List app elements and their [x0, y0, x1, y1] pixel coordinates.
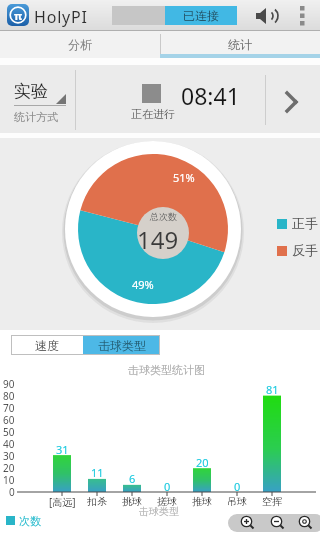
staticText: 推球: [192, 495, 212, 508]
staticText: 正手: [292, 215, 318, 231]
staticText: 实验: [14, 81, 48, 102]
staticText: 总次数: [150, 211, 177, 222]
staticText: 0: [234, 479, 241, 494]
staticText: π: [14, 8, 23, 23]
button[interactable]: [270, 515, 286, 531]
button[interactable]: 分析: [0, 31, 160, 58]
staticText: 正在进行: [131, 107, 175, 121]
staticText: 击球类型: [98, 338, 146, 353]
staticText: 20: [3, 461, 15, 475]
button[interactable]: 速度: [11, 335, 83, 355]
staticText: 已连接: [183, 8, 219, 23]
staticText: 搓球: [157, 495, 177, 508]
staticText: 击球类型: [139, 505, 179, 518]
staticText: 挑球: [122, 495, 142, 508]
button[interactable]: π: [7, 4, 29, 26]
staticText: 空挥: [262, 495, 282, 508]
staticText: 10: [3, 473, 15, 487]
staticText: 击球类型统计图: [128, 363, 205, 377]
button[interactable]: [281, 91, 301, 113]
staticText: 11: [91, 465, 104, 480]
staticText: 分析: [68, 37, 92, 52]
staticText: 吊球: [227, 495, 247, 508]
staticText: 30: [3, 449, 15, 463]
staticText: 20: [196, 455, 209, 470]
button[interactable]: [8, 75, 70, 125]
staticText: 51%: [173, 170, 195, 185]
staticText: 81: [266, 382, 279, 397]
staticText: 次数: [19, 514, 41, 528]
staticText: 统计: [228, 37, 252, 52]
staticText: 149: [137, 223, 179, 256]
staticText: 60: [3, 413, 15, 427]
button[interactable]: 统计: [160, 31, 320, 58]
staticText: 70: [3, 401, 15, 415]
staticText: 80: [3, 389, 15, 403]
staticText: 统计方式: [14, 110, 58, 124]
button[interactable]: [240, 515, 256, 531]
staticText: 08:41: [181, 80, 240, 111]
staticText: 49%: [132, 277, 154, 292]
staticText: 40: [3, 437, 15, 451]
button[interactable]: 已连接: [165, 6, 237, 25]
staticText: [高远]: [49, 495, 76, 509]
staticText: 反手: [292, 242, 318, 258]
button[interactable]: [296, 5, 308, 27]
button[interactable]: 击球类型: [83, 335, 160, 355]
staticText: 扣杀: [87, 495, 107, 508]
staticText: 6: [129, 471, 136, 486]
staticText: HolyPI: [34, 6, 88, 28]
staticText: 31: [56, 442, 69, 457]
staticText: 速度: [35, 338, 59, 353]
button[interactable]: [255, 6, 279, 26]
staticText: 50: [3, 425, 15, 439]
button[interactable]: [298, 515, 314, 531]
staticText: 0: [9, 485, 15, 499]
staticText: 0: [164, 479, 171, 494]
staticText: 90: [3, 377, 15, 391]
